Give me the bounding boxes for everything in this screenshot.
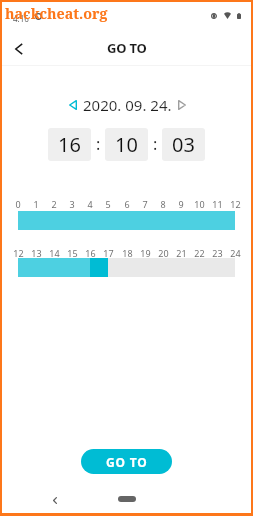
staticText: 2 bbox=[51, 198, 57, 210]
staticText: 0 bbox=[15, 198, 21, 210]
staticText: GO TO bbox=[106, 454, 148, 470]
staticText: 24 bbox=[230, 247, 241, 259]
button[interactable]: Home bbox=[118, 496, 136, 502]
button[interactable]: 03 bbox=[162, 128, 205, 161]
button[interactable]: Next day bbox=[173, 96, 191, 114]
staticText: 16 bbox=[85, 247, 96, 259]
staticText: 12 bbox=[230, 198, 241, 210]
staticText: hackcheat.org bbox=[5, 4, 108, 23]
button[interactable] bbox=[18, 258, 235, 277]
staticText: : bbox=[96, 133, 101, 155]
staticText: 16 bbox=[58, 131, 81, 158]
staticText: 6 bbox=[124, 198, 130, 210]
staticText: 1 bbox=[33, 198, 39, 210]
staticText: 9 bbox=[178, 198, 184, 210]
staticText: 13 bbox=[31, 247, 42, 259]
staticText: 4 bbox=[87, 198, 93, 210]
staticText: 14 bbox=[49, 247, 60, 259]
button[interactable]: 16 bbox=[48, 128, 91, 161]
staticText: GO TO bbox=[107, 39, 147, 57]
staticText: 5 bbox=[105, 198, 111, 210]
staticText: 10 bbox=[194, 198, 205, 210]
button[interactable]: Previous day bbox=[64, 96, 82, 114]
staticText: 3 bbox=[69, 198, 75, 210]
staticText: 7 bbox=[142, 198, 148, 210]
staticText: 23 bbox=[212, 247, 223, 259]
staticText: 4:16 bbox=[13, 13, 29, 24]
button[interactable]: 10 bbox=[105, 128, 148, 161]
staticText: 20 bbox=[158, 247, 169, 259]
staticText: 19 bbox=[140, 247, 151, 259]
staticText: 21 bbox=[176, 247, 187, 259]
button[interactable]: Back bbox=[44, 489, 66, 511]
staticText: 11 bbox=[212, 198, 223, 210]
staticText: 10 bbox=[115, 131, 138, 158]
button[interactable]: 2020. 09. 24. bbox=[83, 95, 172, 115]
staticText: 17 bbox=[103, 247, 114, 259]
staticText: 18 bbox=[122, 247, 133, 259]
staticText: 03 bbox=[172, 131, 195, 158]
button[interactable]: Back bbox=[4, 33, 34, 63]
button[interactable]: GO TO bbox=[81, 449, 172, 474]
staticText: 12 bbox=[13, 247, 24, 259]
staticText: : bbox=[153, 133, 158, 155]
staticText: 8 bbox=[160, 198, 166, 210]
staticText: 22 bbox=[194, 247, 205, 259]
staticText: 15 bbox=[67, 247, 78, 259]
